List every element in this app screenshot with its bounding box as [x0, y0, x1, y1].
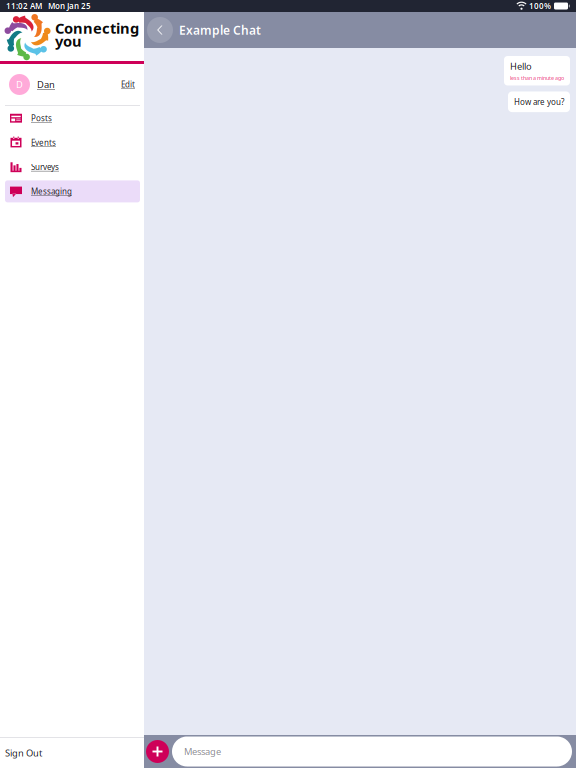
button[interactable]: Message [172, 736, 572, 766]
button[interactable]: Sign Out [0, 738, 144, 768]
staticText: Events [31, 137, 56, 148]
staticText: D [16, 78, 23, 91]
button[interactable]: Posts [0, 106, 144, 130]
staticText: 11:02 AM [6, 1, 42, 11]
staticText: Hello [510, 60, 532, 72]
staticText: you [55, 31, 82, 51]
staticText: Connecting [55, 18, 139, 38]
button[interactable]: Events [0, 130, 144, 155]
staticText: Message [184, 745, 221, 758]
button[interactable]: Add attachment [146, 740, 169, 763]
staticText: 100% [529, 1, 551, 11]
staticText: Sign Out [5, 747, 42, 759]
staticText: Edit [121, 79, 135, 90]
button[interactable]: D [0, 64, 144, 105]
staticText: Surveys [31, 162, 59, 172]
staticText: less than a minute ago [510, 74, 564, 81]
staticText: Example Chat [179, 22, 261, 38]
staticText: How are you? [514, 96, 564, 107]
button[interactable]: Back [147, 17, 173, 43]
staticText: Dan [37, 78, 55, 91]
staticText: Messaging [31, 186, 72, 197]
button[interactable]: Surveys [0, 155, 144, 179]
staticText: Posts [31, 113, 52, 123]
button[interactable]: Messaging [0, 179, 144, 204]
staticText: Mon Jan 25 [48, 1, 91, 11]
